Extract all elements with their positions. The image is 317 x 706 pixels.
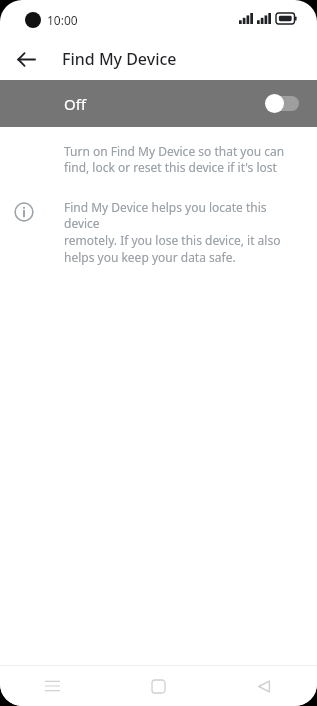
other: Information	[13, 201, 35, 223]
button[interactable]: Off	[0, 80, 317, 127]
staticText: Find My Device helps you locate this dev…	[64, 199, 303, 266]
button[interactable]: Home	[105, 666, 211, 706]
staticText: 10:00	[47, 12, 78, 28]
staticText: Turn on Find My Device so that you can f…	[64, 143, 299, 176]
button[interactable]: Back	[9, 42, 43, 76]
button[interactable]: Back	[211, 666, 317, 706]
staticText: Off	[64, 94, 87, 114]
button[interactable]: Recent apps	[0, 666, 105, 706]
staticText: Find My Device	[62, 48, 177, 70]
button[interactable]: Find My Device toggle, off	[265, 94, 299, 113]
